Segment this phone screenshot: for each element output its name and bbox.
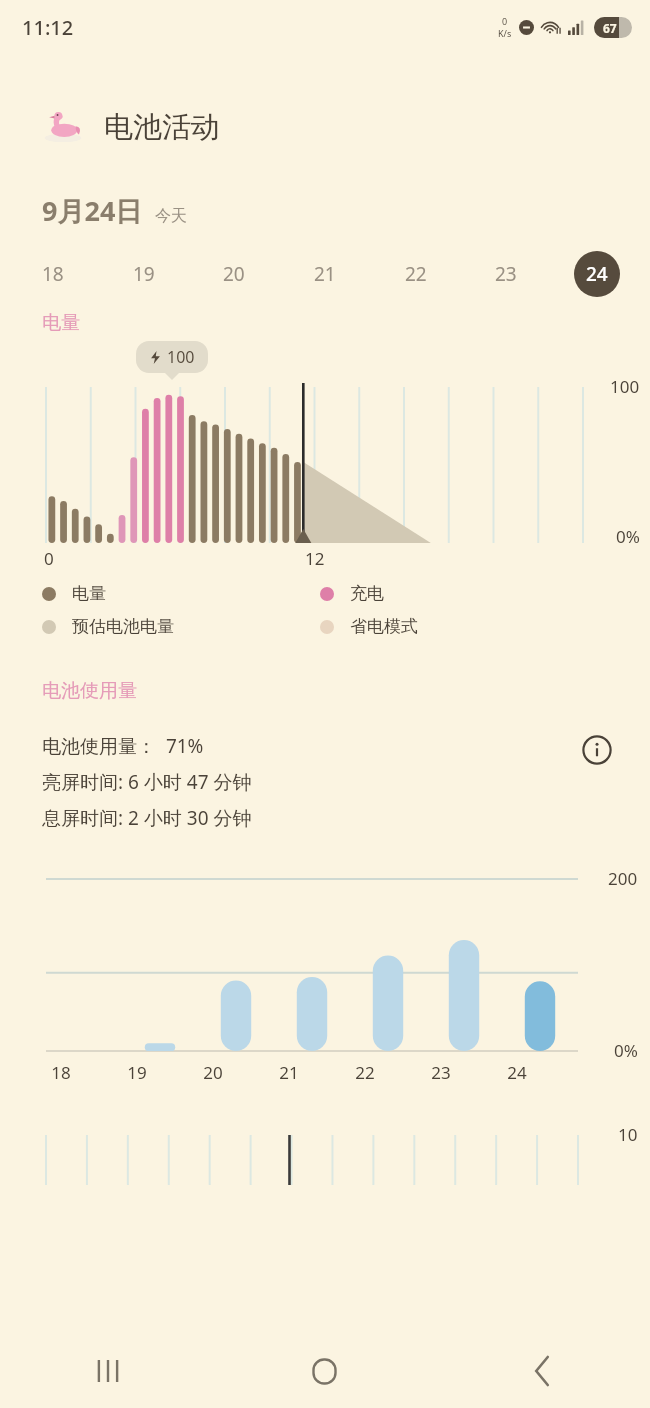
staticText: 23 [431, 1061, 451, 1084]
button[interactable]: 21 [302, 251, 348, 297]
staticText: 23 [495, 261, 517, 287]
staticText: 21 [314, 261, 336, 287]
staticText: K/s [498, 27, 512, 39]
button[interactable]: 20 [211, 251, 257, 297]
staticText: 省电模式 [350, 616, 418, 637]
button[interactable]: 22 [393, 251, 439, 297]
button[interactable]: 19 [121, 251, 167, 297]
staticText: 100 [167, 346, 195, 368]
staticText: 22 [355, 1061, 375, 1084]
button[interactable]: 信息 [580, 733, 614, 767]
staticText: 21 [279, 1061, 299, 1084]
staticText: 19 [133, 261, 155, 287]
staticText: 电量 [72, 583, 106, 604]
staticText: 18 [51, 1061, 71, 1084]
staticText: 0% [614, 1039, 638, 1062]
staticText: 0% [616, 525, 640, 548]
staticText: 电池使用量： 71% [42, 733, 204, 759]
staticText: 24 [507, 1061, 527, 1084]
staticText: 息屏时间: 2 小时 30 分钟 [42, 805, 252, 831]
staticText: 18 [42, 261, 64, 287]
staticText: 67 [603, 20, 617, 36]
staticText: 9月24日 [42, 192, 143, 229]
staticText: 电池使用量 [42, 679, 137, 703]
button[interactable]: 返回 [433, 1334, 650, 1408]
staticText: 充电 [350, 583, 384, 604]
staticText: 亮屏时间: 6 小时 47 分钟 [42, 769, 252, 795]
button[interactable]: 24 [574, 251, 620, 297]
staticText: 0 [44, 547, 54, 570]
button[interactable]: 最近任务 [0, 1334, 216, 1408]
staticText: 19 [127, 1061, 147, 1084]
staticText: 电量 [42, 311, 80, 335]
staticText: 今天 [155, 206, 187, 226]
button[interactable]: 18 [30, 251, 76, 297]
staticText: 10 [618, 1123, 638, 1146]
staticText: 预估电池电量 [72, 616, 174, 637]
staticText: 24 [586, 261, 608, 287]
staticText: 100 [610, 375, 640, 398]
staticText: 200 [608, 867, 638, 890]
staticText: 12 [305, 547, 325, 570]
button[interactable]: 23 [483, 251, 529, 297]
staticText: 20 [223, 261, 245, 287]
button[interactable]: 主屏幕 [216, 1334, 433, 1408]
staticText: 20 [203, 1061, 223, 1084]
staticText: 11:12 [22, 14, 74, 41]
staticText: 电池活动 [104, 109, 220, 146]
staticText: 0 [502, 15, 508, 27]
staticText: 22 [405, 261, 427, 287]
